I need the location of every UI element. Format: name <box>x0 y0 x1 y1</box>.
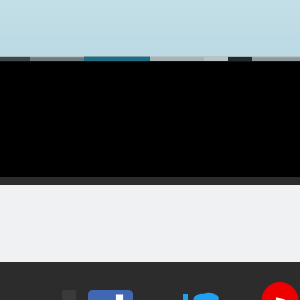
button[interactable] <box>0 56 300 62</box>
button[interactable]: YouTube <box>258 290 300 300</box>
button[interactable]: Twitter <box>190 291 220 300</box>
button[interactable]: Facebook <box>88 290 133 300</box>
